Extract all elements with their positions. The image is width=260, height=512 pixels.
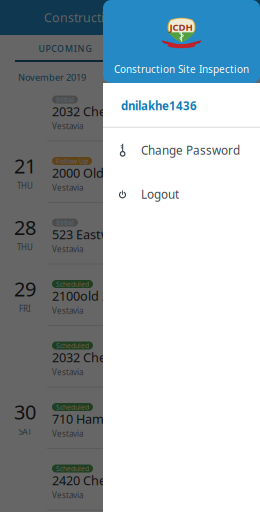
staticText: 523 Eastwood: [52, 226, 135, 243]
staticText: SAT: [18, 426, 31, 437]
staticText: THU: [17, 180, 33, 191]
staticText: 2100old 280: [52, 287, 123, 305]
staticText: 2000 Old 280: [52, 164, 128, 182]
staticText: November 2019: [18, 71, 86, 83]
staticText: 21: [14, 152, 36, 179]
staticText: UPCOMING: [38, 42, 91, 54]
staticText: 28: [14, 213, 36, 241]
staticText: Follow Up: [56, 156, 88, 166]
staticText: Construction Site Inspection: [44, 9, 209, 26]
staticText: 2420 Chestnut: [52, 472, 138, 489]
button[interactable]: Scheduled: [0, 339, 260, 401]
staticText: Scheduled: [56, 279, 89, 289]
staticText: 30: [14, 398, 36, 425]
button[interactable]: 21: [0, 155, 260, 216]
button[interactable]: 29: [0, 278, 260, 339]
staticText: dnilakhe1436: [121, 98, 197, 114]
staticText: Vestavia: [52, 244, 83, 255]
staticText: 29: [14, 275, 36, 302]
staticText: Scheduled: [56, 341, 89, 350]
staticText: Vestavia: [52, 121, 83, 132]
staticText: JCDH: [169, 21, 192, 34]
button[interactable]: 30: [0, 401, 260, 462]
button[interactable]: UPCOMING: [0, 35, 130, 62]
staticText: Construction Site Inspection: [114, 62, 249, 76]
staticText: 2032 Chestnut: [52, 349, 138, 366]
staticText: Change Password: [141, 142, 240, 158]
staticText: Scheduled: [56, 402, 89, 412]
staticText: Vestavia: [52, 182, 83, 193]
staticText: Logout: [141, 186, 179, 202]
button[interactable]: 28: [0, 216, 260, 278]
button[interactable]: Scheduled: [0, 462, 260, 512]
staticText: 2032 Chestnut: [52, 103, 138, 120]
staticText: Scheduled: [56, 464, 89, 473]
staticText: Initial: [56, 218, 74, 227]
button[interactable]: Logout: [103, 172, 260, 216]
staticText: Vestavia: [52, 367, 83, 378]
staticText: Vestavia: [52, 490, 83, 501]
staticText: HISTORY: [173, 42, 217, 54]
button[interactable]: Change Password: [103, 128, 260, 172]
button[interactable]: HISTORY: [130, 35, 260, 62]
button[interactable]: Close menu: [0, 0, 260, 512]
staticText: 710 Hamden: [52, 410, 127, 428]
staticText: FRI: [19, 303, 31, 314]
button[interactable]: Initial: [0, 93, 260, 155]
staticText: Initial: [56, 95, 74, 104]
staticText: Vestavia: [52, 428, 83, 439]
staticText: Vestavia: [52, 305, 83, 316]
staticText: THU: [17, 242, 33, 253]
